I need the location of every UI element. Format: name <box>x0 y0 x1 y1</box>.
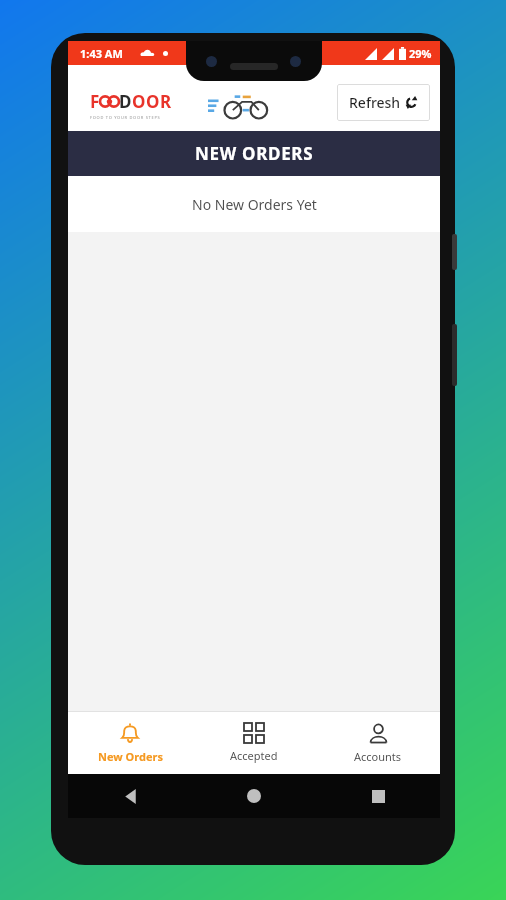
staticText: FOOD TO YOUR DOOR STEPS <box>90 115 161 120</box>
other: Accounts <box>368 723 389 744</box>
staticText: F <box>90 90 100 113</box>
other: Accepted <box>244 723 264 743</box>
other: New Orders <box>119 722 141 744</box>
staticText: Refresh <box>349 93 401 112</box>
button[interactable]: Back <box>68 774 192 818</box>
staticText: R <box>160 90 172 113</box>
button[interactable]: Refresh <box>337 84 430 121</box>
staticText: Accepted <box>230 748 278 763</box>
staticText: No New Orders Yet <box>192 195 317 214</box>
button[interactable]: Accounts <box>316 712 440 774</box>
button[interactable]: Recents <box>316 774 440 818</box>
staticText: 1:43 AM <box>80 46 123 61</box>
staticText: O <box>132 90 146 113</box>
button[interactable]: Home <box>192 774 316 818</box>
button[interactable]: New Orders <box>68 712 192 774</box>
button[interactable]: Accepted <box>192 712 316 774</box>
staticText: 29% <box>409 46 432 61</box>
staticText: O <box>146 90 160 113</box>
staticText: NEW ORDERS <box>195 142 314 165</box>
staticText: D <box>119 90 132 113</box>
staticText: Accounts <box>354 749 402 764</box>
staticText: New Orders <box>98 749 163 764</box>
